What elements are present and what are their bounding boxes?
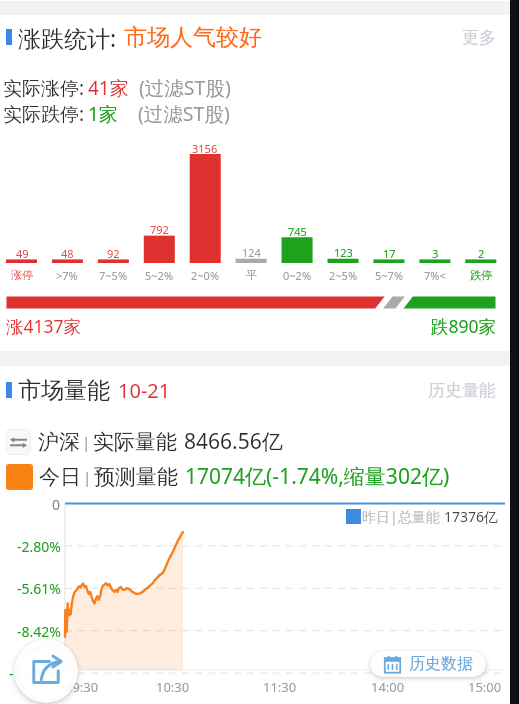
staticText: 1家 — [88, 101, 118, 127]
staticText: | — [82, 432, 91, 452]
staticText: 0 — [52, 495, 61, 514]
staticText: 15:00 — [468, 678, 502, 696]
staticText: 10:30 — [156, 678, 190, 696]
staticText: 更多 — [462, 27, 496, 48]
staticText: (过滤ST股) — [138, 100, 230, 127]
staticText: 123 — [334, 245, 353, 260]
staticText: 8466.56亿 — [184, 427, 283, 456]
staticText: (过滤ST股) — [139, 74, 231, 101]
staticText: 实际涨停: — [3, 75, 85, 101]
staticText: 5~2% — [145, 268, 174, 283]
staticText: 7~5% — [99, 268, 128, 283]
staticText: 涨停 — [11, 268, 33, 282]
staticText: 历史量能 — [428, 380, 496, 401]
staticText: 3156 — [192, 141, 218, 156]
staticText: 2~5% — [329, 268, 358, 283]
staticText: 预测量能 — [94, 464, 178, 490]
button[interactable]: 沪深 — [6, 427, 283, 456]
staticText: 10-21 — [118, 377, 171, 404]
staticText: 792 — [150, 222, 169, 237]
staticText: 7%< — [424, 268, 446, 283]
staticText: 0~2% — [283, 268, 312, 283]
button[interactable]: 涨跌统计: — [0, 20, 519, 54]
staticText: >7% — [56, 268, 78, 283]
staticText: 市场量能 — [18, 376, 110, 405]
staticText: -5.61% — [17, 579, 61, 598]
staticText: 5~7% — [375, 268, 404, 283]
staticText: 实际量能 — [93, 429, 177, 455]
staticText: | — [83, 467, 92, 487]
staticText: 历史数据 — [409, 654, 473, 674]
staticText: 17074亿(-1.74%,缩量302亿) — [185, 462, 450, 491]
staticText: 11:30 — [263, 678, 297, 696]
staticText: 沪深 — [38, 429, 80, 455]
staticText: 实际跌停: — [3, 101, 85, 127]
staticText: 2 — [478, 246, 485, 261]
staticText: -2.80% — [17, 537, 61, 556]
button[interactable]: 市场量能 — [0, 374, 519, 406]
staticText: 跌停 — [470, 268, 492, 282]
button[interactable]: 历史数据 — [370, 651, 486, 677]
staticText: 昨日|总量能 — [362, 507, 440, 526]
staticText: 跌890家 — [431, 314, 497, 338]
staticText: 市场人气较好 — [124, 23, 262, 52]
staticText: 涨跌统计: — [18, 22, 117, 53]
staticText: 17376亿 — [444, 507, 499, 526]
staticText: 09:30 — [65, 678, 99, 696]
staticText: 平 — [246, 268, 257, 282]
staticText: 14:00 — [371, 678, 405, 696]
staticText: 48 — [61, 246, 74, 261]
staticText: 124 — [242, 245, 261, 260]
button[interactable]: Share — [14, 639, 78, 703]
staticText: -11.23% — [9, 664, 61, 683]
staticText: 41家 — [88, 75, 129, 101]
staticText: 2~0% — [191, 268, 220, 283]
staticText: 745 — [288, 224, 307, 239]
staticText: 49 — [16, 246, 29, 261]
staticText: 3 — [432, 246, 439, 261]
staticText: 涨4137家 — [6, 314, 82, 338]
staticText: 17 — [383, 246, 396, 261]
staticText: 92 — [107, 246, 120, 261]
staticText: -8.42% — [17, 622, 61, 641]
staticText: 今日 — [39, 464, 81, 490]
